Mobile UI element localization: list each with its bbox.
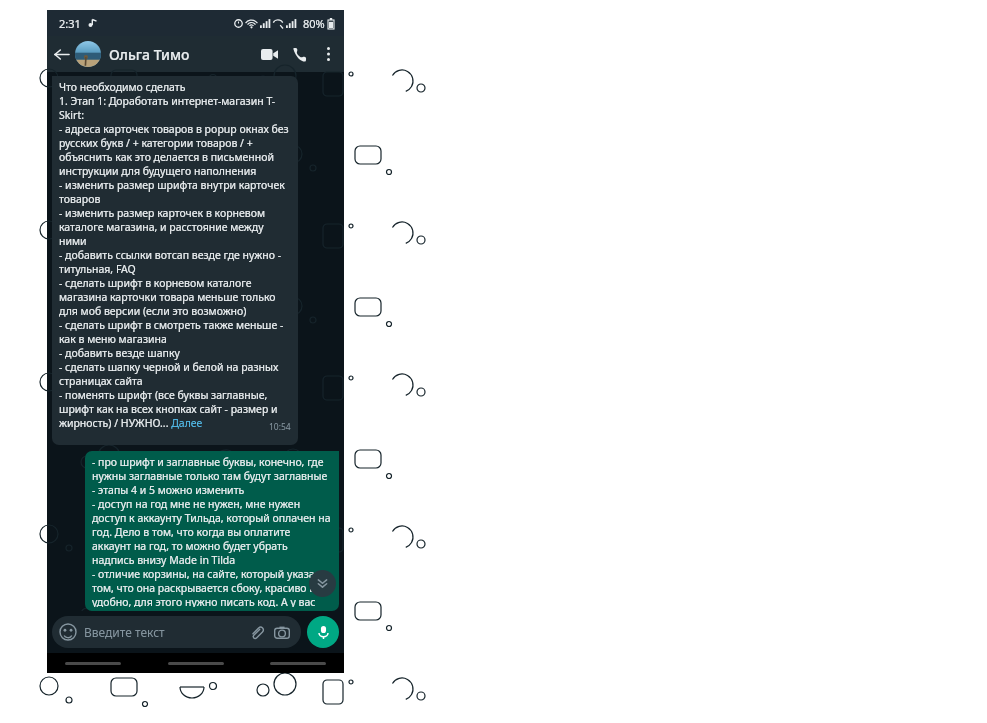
button[interactable]: More options <box>314 40 342 68</box>
staticText: 10:54 <box>269 421 291 433</box>
staticText: - про шрифт и заглавные буквы, конечно, … <box>92 455 332 607</box>
button[interactable]: Scroll to bottom <box>309 570 336 597</box>
button[interactable]: Back <box>47 40 75 68</box>
button[interactable]: Voice call <box>284 39 314 69</box>
staticText: 2:31 <box>59 16 81 31</box>
button[interactable]: Video call <box>254 39 284 69</box>
button[interactable]: - про шрифт и заглавные буквы, конечно, … <box>85 451 339 611</box>
staticText: 80% <box>303 16 325 31</box>
button[interactable]: Ольга Тимо <box>109 45 254 64</box>
button[interactable]: Что необходимо сделать 1. Этап 1: Дорабо… <box>52 76 298 445</box>
staticText: Ольга Тимо <box>109 45 190 64</box>
button[interactable]: Camera <box>271 621 293 643</box>
button[interactable]: Home <box>168 662 224 665</box>
button[interactable]: Back <box>65 662 121 665</box>
staticText: Введите текст <box>84 624 245 640</box>
button[interactable]: Введите текст <box>52 616 301 648</box>
button[interactable]: Record voice message <box>307 616 339 648</box>
staticText: Что необходимо сделать 1. Этап 1: Дорабо… <box>59 80 291 430</box>
button[interactable]: Recents <box>270 662 326 665</box>
button[interactable]: Profile photo <box>75 41 101 67</box>
button[interactable]: Attach <box>245 621 267 643</box>
